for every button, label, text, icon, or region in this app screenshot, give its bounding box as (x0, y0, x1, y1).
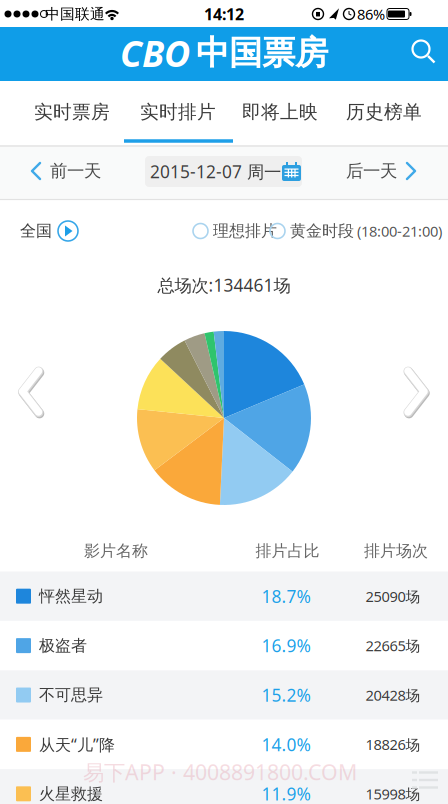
staticText: 排片占比 (255, 541, 319, 561)
staticText: 全国 (20, 221, 52, 241)
staticText: 影片名称 (84, 541, 148, 561)
staticText: 不可思异 (39, 685, 103, 705)
staticText: 极盗者 (39, 636, 87, 655)
button[interactable]: 从天“儿”降 (0, 720, 448, 769)
button[interactable]: 实时排片 (128, 84, 228, 140)
staticText: 中国联通 (45, 5, 105, 23)
button[interactable]: 全国 (20, 211, 78, 251)
staticText: 理想排片 (213, 221, 277, 241)
staticText: 16.9% (261, 634, 310, 657)
staticText: (18:00-21:00) (357, 221, 442, 241)
staticText: 易下APP · 4008891800.COM (83, 758, 357, 786)
button[interactable]: 2015-12-07 周一 (145, 156, 302, 187)
staticText: 黄金时段 (290, 221, 354, 241)
button[interactable]: 火星救援 (0, 769, 448, 804)
button[interactable]: 黄金时段 (270, 221, 442, 241)
staticText: 怦然星动 (39, 586, 103, 606)
staticText: 前一天 (50, 160, 101, 182)
button[interactable]: 极盗者 (0, 621, 448, 670)
staticText: 排片场次 (364, 541, 428, 561)
button[interactable]: 不可思异 (0, 670, 448, 720)
staticText: 18826场 (365, 735, 420, 754)
staticText: 11.9% (261, 782, 310, 804)
staticText: 25090场 (365, 586, 420, 606)
staticText: 15.2% (261, 683, 310, 706)
staticText: 14:12 (204, 3, 244, 25)
staticText: 86% (357, 4, 385, 24)
staticText: 2015-12-07 周一 (150, 160, 281, 183)
staticText: 实时票房 (34, 100, 110, 123)
button[interactable]: 即将上映 (230, 84, 330, 140)
button[interactable]: 历史榜单 (334, 84, 434, 140)
button[interactable]: 下一图表 (396, 363, 436, 419)
button[interactable]: 怦然星动 (0, 571, 448, 621)
staticText: 后一天 (346, 160, 397, 182)
staticText: CBO (120, 28, 190, 77)
staticText: 22665场 (365, 636, 420, 655)
staticText: 14.0% (261, 733, 310, 756)
button[interactable]: 理想排片 (193, 221, 277, 241)
staticText: 火星救援 (39, 784, 103, 804)
staticText: 18.7% (261, 585, 310, 608)
staticText: 实时排片 (140, 100, 216, 123)
staticText: 20428场 (365, 685, 420, 705)
button[interactable]: 搜索 (404, 32, 444, 72)
staticText: 总场次:134461场 (157, 273, 290, 296)
staticText: 中国票房 (196, 32, 328, 74)
staticText: 即将上映 (242, 100, 318, 123)
button[interactable]: 前一天 (23, 149, 109, 193)
button[interactable]: 后一天 (338, 149, 424, 193)
staticText: 历史榜单 (346, 100, 422, 123)
button[interactable]: 上一图表 (10, 363, 50, 419)
staticText: 从天“儿”降 (39, 734, 115, 755)
staticText: 15998场 (365, 784, 420, 804)
button[interactable]: 实时票房 (22, 84, 122, 140)
